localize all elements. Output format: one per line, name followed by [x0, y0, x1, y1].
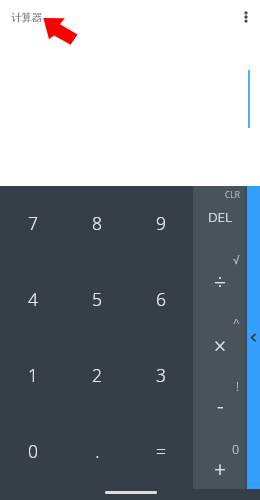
staticText: 1 [28, 363, 38, 387]
button[interactable]: More options [234, 5, 258, 29]
staticText: CLR [225, 189, 240, 201]
staticText: 9 [156, 211, 166, 235]
staticText: + [214, 456, 226, 485]
staticText: 2 [92, 363, 102, 387]
button[interactable]: ^ [193, 312, 245, 375]
staticText: √ [233, 254, 240, 267]
staticText: 0 [232, 441, 240, 458]
button[interactable]: ! [193, 375, 245, 438]
staticText: 6 [156, 287, 166, 311]
button[interactable]: 7 [0, 186, 64, 262]
staticText: ^ [233, 315, 240, 331]
button[interactable]: 9 [128, 186, 192, 262]
button[interactable]: 0 [0, 414, 64, 489]
button[interactable]: = [128, 414, 192, 489]
button[interactable]: 1 [0, 338, 64, 414]
staticText: 7 [28, 211, 38, 235]
button[interactable]: 5 [64, 262, 128, 338]
button[interactable]: Show history panel [247, 186, 260, 489]
staticText: 8 [92, 211, 102, 235]
staticText: 3 [156, 363, 166, 387]
staticText: 0 [28, 439, 38, 463]
staticText: × [214, 332, 226, 361]
button[interactable]: 计算器 [6, 3, 58, 31]
staticText: ÷ [214, 268, 226, 297]
staticText: - [217, 392, 224, 421]
button[interactable]: CLR [193, 186, 245, 249]
button[interactable]: 2 [64, 338, 128, 414]
button[interactable]: . [64, 414, 128, 489]
staticText: DEL [208, 208, 233, 226]
button[interactable]: 8 [64, 186, 128, 262]
staticText: = [156, 439, 166, 463]
staticText: ! [236, 378, 240, 395]
staticText: 5 [92, 287, 102, 311]
button[interactable]: √ [193, 249, 245, 312]
button[interactable]: 4 [0, 262, 64, 338]
staticText: 计算器 [11, 11, 43, 24]
staticText: . [95, 439, 100, 463]
button[interactable]: 0 [193, 438, 245, 489]
button[interactable]: 6 [128, 262, 192, 338]
staticText: 4 [28, 287, 38, 311]
button[interactable]: 3 [128, 338, 192, 414]
